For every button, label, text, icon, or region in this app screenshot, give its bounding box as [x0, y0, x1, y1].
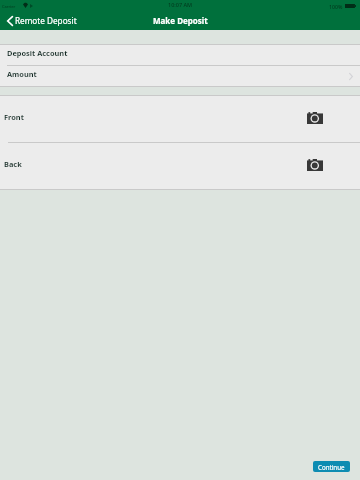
- button[interactable]: Continue: [313, 461, 350, 472]
- staticText: Remote Deposit: [15, 15, 77, 26]
- staticText: Make Deposit: [153, 15, 208, 26]
- button[interactable]: Back: [0, 143, 360, 189]
- staticText: Amount: [7, 69, 37, 79]
- staticText: Back: [4, 159, 22, 169]
- button[interactable]: Back to Remote Deposit: [0, 12, 83, 29]
- staticText: Deposit Account: [7, 48, 68, 58]
- button[interactable]: Amount: [0, 66, 360, 86]
- staticText: Carrier: [2, 4, 16, 9]
- staticText: 10:07 AM: [168, 1, 193, 8]
- staticText: Front: [4, 112, 24, 122]
- button[interactable]: Capture Back of check: [307, 159, 323, 171]
- button[interactable]: Front: [0, 96, 360, 142]
- staticText: Continue: [318, 463, 345, 471]
- button[interactable]: Deposit Account: [0, 45, 360, 65]
- staticText: 100%: [329, 3, 343, 10]
- button[interactable]: Capture Front of check: [307, 112, 323, 124]
